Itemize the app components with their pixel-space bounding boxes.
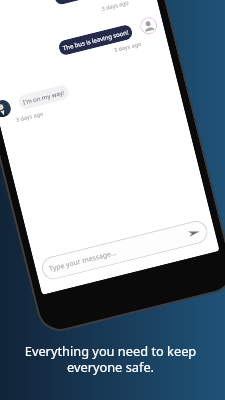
staticText: Everything you need to keep everyone saf…: [0, 342, 223, 375]
staticText: 3 days ago: [101, 0, 130, 12]
staticText: The bus is leaving soon!: [62, 28, 130, 52]
staticText: 3 days ago: [113, 40, 142, 53]
button[interactable]: Type your message...: [39, 218, 210, 282]
staticText: Type your message...: [48, 248, 118, 274]
staticText: I'm on my way!: [22, 89, 66, 107]
staticText: 3 days ago: [15, 109, 44, 123]
button[interactable]: I'm on my way!: [17, 84, 70, 111]
button[interactable]: The bus is leaving soon!: [57, 24, 134, 56]
other: Send: [188, 227, 201, 239]
